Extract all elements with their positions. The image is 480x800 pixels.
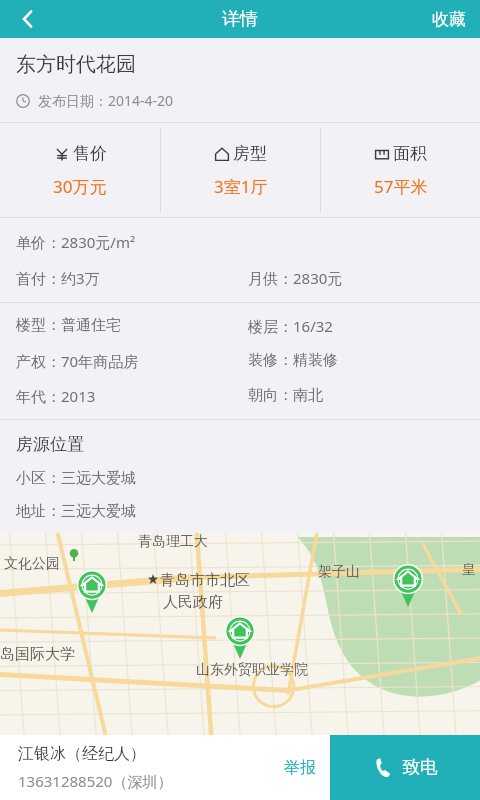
staticText: 山东外贸职业学院 bbox=[196, 661, 308, 679]
staticText: 发布日期：2014-4-20 bbox=[38, 91, 174, 110]
button[interactable]: Map bbox=[0, 533, 480, 735]
staticText: 首付：约3万 bbox=[16, 268, 248, 288]
staticText: 面积 bbox=[393, 143, 427, 164]
button[interactable]: 举报 bbox=[270, 735, 330, 800]
staticText: 举报 bbox=[284, 758, 316, 778]
staticText: 产权：70年商品房 bbox=[16, 351, 248, 371]
staticText: 致电 bbox=[402, 756, 438, 779]
staticText: 架子山 bbox=[318, 563, 360, 581]
staticText: 房源位置 bbox=[16, 434, 84, 455]
staticText: 楼层：16/32 bbox=[248, 316, 480, 336]
staticText: 装修：精装修 bbox=[248, 351, 480, 370]
staticText: 小区：三远大爱城 bbox=[16, 469, 136, 488]
staticText: 57平米 bbox=[374, 175, 428, 198]
button[interactable]: 售价 bbox=[0, 123, 160, 217]
staticText: 单价：2830元/m² bbox=[16, 232, 136, 252]
button[interactable]: 江银冰（经纪人） bbox=[0, 735, 270, 800]
button[interactable]: Back bbox=[0, 0, 56, 38]
staticText: 岛国际大学 bbox=[0, 645, 75, 664]
staticText: 收藏 bbox=[432, 9, 466, 30]
staticText: 人民政府 bbox=[163, 593, 223, 612]
staticText: 3室1厅 bbox=[214, 175, 268, 198]
staticText: 30万元 bbox=[53, 175, 107, 198]
staticText: 详情 bbox=[222, 8, 258, 31]
button[interactable]: 房型 bbox=[161, 123, 320, 217]
button[interactable]: 面积 bbox=[321, 123, 480, 217]
staticText: 13631288520（深圳） bbox=[18, 771, 173, 791]
staticText: 青岛市市北区 bbox=[160, 571, 250, 590]
staticText: 房型 bbox=[233, 143, 267, 164]
staticText: 江银冰（经纪人） bbox=[18, 744, 146, 764]
staticText: 皇 bbox=[462, 561, 476, 579]
staticText: 年代：2013 bbox=[16, 386, 248, 406]
staticText: 朝向：南北 bbox=[248, 386, 480, 405]
staticText: 地址：三远大爱城 bbox=[16, 502, 136, 521]
staticText: 楼型：普通住宅 bbox=[16, 316, 248, 335]
button[interactable]: 致电 bbox=[330, 735, 480, 800]
staticText: 青岛理工大 bbox=[138, 533, 208, 551]
button[interactable]: 收藏 bbox=[418, 0, 480, 38]
staticText: 月供：2830元 bbox=[248, 268, 480, 288]
staticText: 东方时代花园 bbox=[16, 52, 136, 77]
staticText: 文化公园 bbox=[4, 555, 60, 573]
staticText: 售价 bbox=[73, 143, 107, 164]
